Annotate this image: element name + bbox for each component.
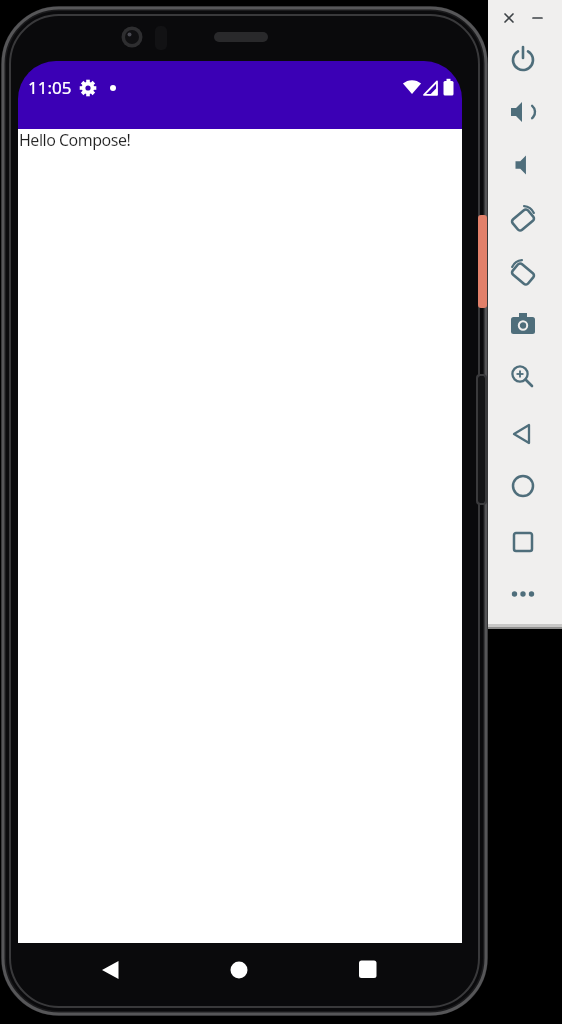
button[interactable] (503, 92, 543, 132)
button[interactable] (503, 522, 543, 562)
button[interactable] (503, 305, 543, 345)
button[interactable] (503, 358, 543, 398)
staticText: 11:05 (28, 76, 72, 99)
button[interactable] (503, 414, 543, 454)
button[interactable] (90, 950, 130, 990)
button[interactable] (503, 145, 543, 185)
button[interactable] (348, 950, 388, 990)
staticText: Hello Compose! (19, 129, 131, 151)
button[interactable] (526, 6, 550, 30)
button[interactable] (497, 6, 521, 30)
button[interactable] (503, 252, 543, 292)
button[interactable] (503, 466, 543, 506)
button[interactable] (503, 198, 543, 238)
button[interactable] (503, 40, 543, 80)
button[interactable] (219, 950, 259, 990)
button[interactable] (503, 574, 543, 614)
